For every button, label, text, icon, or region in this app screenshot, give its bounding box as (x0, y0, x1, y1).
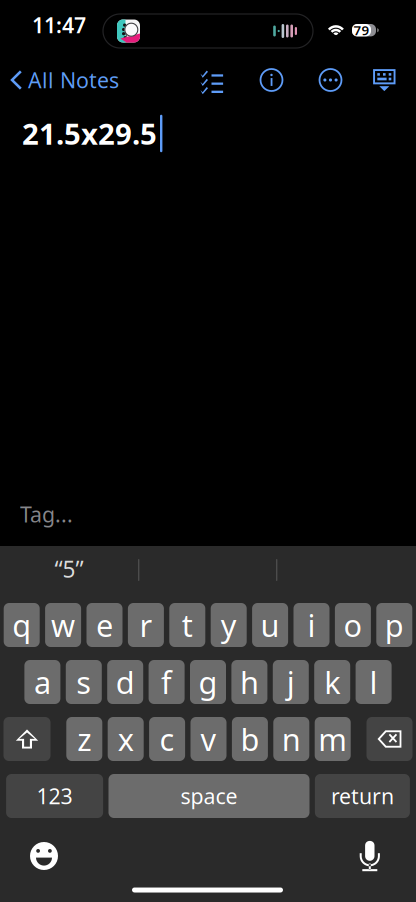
staticText: h (240, 662, 259, 702)
staticText: m (318, 719, 347, 759)
button[interactable]: u (252, 603, 288, 647)
button[interactable]: z (66, 717, 102, 761)
staticText: o (343, 605, 362, 645)
staticText: space (180, 782, 237, 810)
button[interactable]: c (149, 717, 185, 761)
button[interactable]: Info (249, 58, 293, 102)
staticText: n (282, 719, 301, 759)
button[interactable]: i (293, 603, 329, 647)
staticText: k (324, 662, 340, 702)
button[interactable]: More (308, 58, 352, 102)
button[interactable]: h (231, 660, 267, 704)
staticText: p (385, 605, 404, 645)
staticText: z (77, 719, 91, 759)
button[interactable]: Dictation (345, 833, 395, 879)
button[interactable]: n (273, 717, 309, 761)
staticText: y (221, 605, 237, 645)
staticText: b (240, 719, 259, 759)
staticText: Tag... (20, 500, 73, 528)
button[interactable]: r (128, 603, 164, 647)
button[interactable]: e (86, 603, 122, 647)
staticText: 123 (37, 782, 73, 810)
button[interactable]: m (315, 717, 351, 761)
button[interactable]: a (24, 660, 60, 704)
button[interactable]: “5” (0, 546, 138, 592)
staticText: 21.5x29.5 (22, 114, 157, 153)
staticText: f (161, 662, 172, 702)
button[interactable]: l (356, 660, 392, 704)
button[interactable]: d (107, 660, 143, 704)
staticText: c (160, 719, 175, 759)
button[interactable]: v (190, 717, 226, 761)
staticText: s (76, 662, 91, 702)
button[interactable]: Emoji (19, 833, 69, 879)
staticText: d (116, 662, 135, 702)
button[interactable]: o (335, 603, 371, 647)
button[interactable]: y (211, 603, 247, 647)
button[interactable]: k (314, 660, 350, 704)
button[interactable]: g (190, 660, 226, 704)
staticText: w (51, 605, 75, 645)
staticText: i (307, 605, 315, 645)
staticText: t (182, 605, 193, 645)
staticText: a (34, 662, 51, 702)
staticText: l (370, 662, 378, 702)
staticText: e (96, 605, 113, 645)
button[interactable]: f (149, 660, 185, 704)
button[interactable]: Delete (366, 717, 412, 761)
button[interactable]: x (108, 717, 144, 761)
button[interactable]: Hide Keyboard (362, 58, 406, 102)
staticText: 79 (353, 21, 369, 39)
button[interactable]: p (376, 603, 412, 647)
staticText: return (331, 782, 394, 810)
staticText: r (139, 605, 152, 645)
staticText: v (200, 719, 216, 759)
button[interactable]: space (108, 774, 309, 818)
button[interactable]: All Notes (0, 58, 127, 102)
button[interactable]: Shift (3, 717, 50, 761)
button[interactable]: t (169, 603, 205, 647)
staticText: u (261, 605, 280, 645)
staticText: x (118, 719, 134, 759)
staticText: 11:47 (32, 11, 86, 39)
button[interactable]: q (4, 603, 40, 647)
button[interactable]: j (273, 660, 309, 704)
staticText: g (198, 662, 217, 702)
staticText: All Notes (28, 66, 119, 94)
button[interactable]: b (232, 717, 268, 761)
button[interactable]: w (45, 603, 81, 647)
staticText: q (12, 605, 31, 645)
staticText: “5” (54, 554, 83, 584)
button[interactable]: 123 (6, 774, 103, 818)
staticText: j (287, 662, 295, 702)
button[interactable]: Checklist (190, 58, 234, 102)
button[interactable]: return (315, 774, 410, 818)
button[interactable]: s (66, 660, 102, 704)
